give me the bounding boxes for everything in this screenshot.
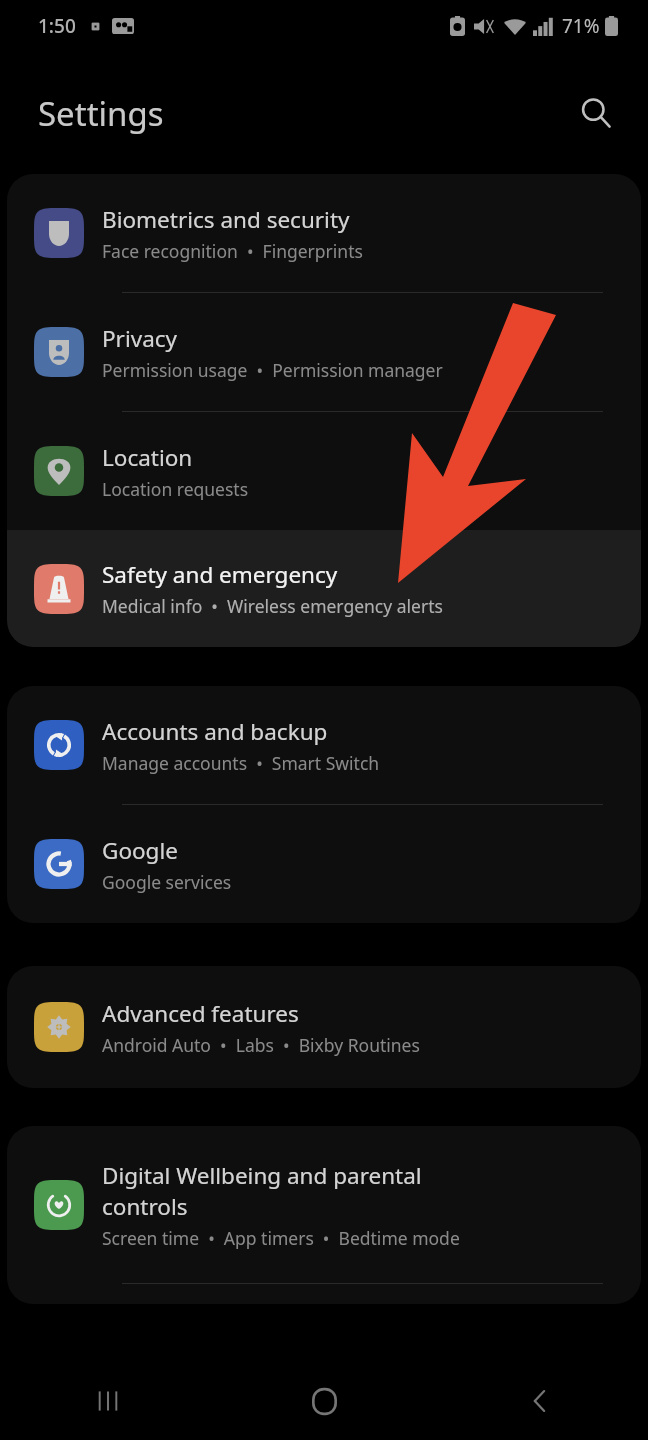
button[interactable]: Home: [216, 1362, 432, 1440]
staticText: Location: [102, 442, 193, 473]
button[interactable]: Back: [432, 1362, 648, 1440]
staticText: Advanced features: [102, 998, 299, 1029]
button[interactable]: Safety and emergency: [7, 530, 641, 647]
staticText: Screen time • App timers • Bedtime mode: [102, 1226, 460, 1250]
staticText: Medical info • Wireless emergency alerts: [102, 594, 443, 618]
staticText: Privacy: [102, 323, 178, 354]
staticText: Safety and emergency: [102, 559, 338, 590]
staticText: Google services: [102, 870, 232, 894]
staticText: Biometrics and security: [102, 204, 350, 235]
staticText: Location requests: [102, 477, 249, 501]
staticText: Google: [102, 835, 178, 866]
button[interactable]: Accounts and backup: [7, 686, 641, 804]
button[interactable]: Biometrics and security: [7, 174, 641, 292]
staticText: Android Auto • Labs • Bixby Routines: [102, 1033, 420, 1057]
button[interactable]: Search: [568, 85, 624, 141]
staticText: Face recognition • Fingerprints: [102, 239, 363, 263]
staticText: Permission usage • Permission manager: [102, 358, 443, 382]
button[interactable]: Recent apps: [0, 1362, 216, 1440]
staticText: 71%: [562, 13, 600, 39]
staticText: 1:50: [38, 13, 76, 39]
button[interactable]: Privacy: [7, 293, 641, 411]
staticText: Accounts and backup: [102, 716, 328, 747]
button[interactable]: Digital Wellbeing and parental controls: [7, 1126, 641, 1283]
staticText: Settings: [38, 91, 164, 136]
staticText: Digital Wellbeing and parental controls: [102, 1160, 422, 1222]
button[interactable]: Advanced features: [7, 966, 641, 1088]
button[interactable]: Google: [7, 805, 641, 923]
staticText: Manage accounts • Smart Switch: [102, 751, 380, 775]
button[interactable]: Location: [7, 412, 641, 530]
